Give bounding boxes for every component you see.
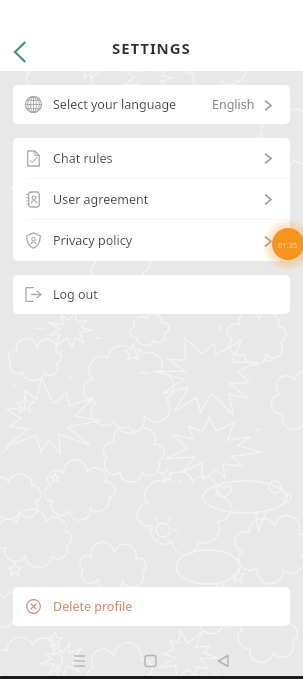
button[interactable]: Back <box>0 32 40 72</box>
button[interactable]: User agreement <box>13 179 290 219</box>
staticText: 01:35 <box>278 240 298 250</box>
staticText: English <box>212 96 255 113</box>
staticText: Chat rules <box>53 150 113 167</box>
staticText: Privacy policy <box>53 232 133 249</box>
button[interactable]: Privacy policy <box>13 220 290 261</box>
staticText: User agreement <box>53 191 149 208</box>
staticText: Select your language <box>53 96 177 113</box>
button[interactable]: Chat rules <box>13 138 290 178</box>
button[interactable]: Log out <box>13 275 290 314</box>
button[interactable]: Delete profile <box>13 587 290 626</box>
button[interactable]: Select your language <box>13 85 290 124</box>
staticText: Log out <box>53 286 98 303</box>
staticText: Delete profile <box>53 598 133 615</box>
staticText: SETTINGS <box>112 38 191 58</box>
button[interactable]: Timer 01:35 <box>272 228 303 260</box>
